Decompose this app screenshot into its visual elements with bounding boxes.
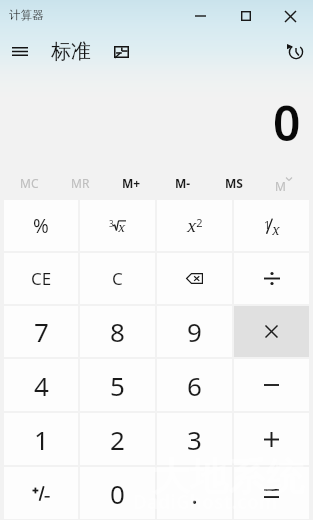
button[interactable]: C: [80, 253, 155, 304]
button[interactable]: More memory options: [259, 168, 310, 198]
staticText: C: [112, 267, 123, 290]
button[interactable]: M+: [106, 168, 157, 198]
staticText: x2: [187, 214, 203, 237]
button[interactable]: 9: [157, 306, 232, 357]
staticText: %: [33, 213, 49, 239]
staticText: 1: [34, 422, 49, 457]
button[interactable]: Minimize: [178, 0, 223, 32]
button[interactable]: MC: [3, 168, 55, 198]
staticText: x: [272, 220, 280, 236]
button[interactable]: 4: [4, 359, 78, 411]
button[interactable]: 6: [157, 359, 232, 411]
button[interactable]: M-: [157, 168, 208, 198]
button[interactable]: 0: [80, 467, 155, 519]
button[interactable]: 8: [80, 306, 155, 357]
button[interactable]: CE: [4, 253, 78, 304]
button[interactable]: Maximize: [223, 0, 268, 32]
staticText: MC: [20, 175, 39, 191]
button[interactable]: 7: [4, 306, 78, 357]
staticText: M: [275, 178, 286, 192]
button[interactable]: 3: [157, 413, 232, 465]
staticText: DadiGhost.com: [133, 489, 278, 515]
button[interactable]: %: [4, 200, 78, 251]
staticText: 5: [110, 368, 125, 403]
button[interactable]: 1: [234, 200, 309, 251]
staticText: MR: [71, 175, 90, 191]
staticText: x: [118, 218, 126, 234]
staticText: 8: [110, 314, 125, 349]
staticText: M-: [175, 175, 191, 191]
staticText: 0: [273, 90, 301, 148]
staticText: 标准: [51, 39, 91, 64]
button[interactable]: MR: [55, 168, 106, 198]
staticText: 7: [34, 314, 49, 349]
button[interactable]: Plus: [234, 413, 309, 465]
button[interactable]: x2: [157, 200, 232, 251]
button[interactable]: Menu: [4, 31, 36, 72]
staticText: 计算器: [9, 8, 44, 22]
button[interactable]: History: [281, 31, 309, 72]
staticText: CE: [31, 267, 52, 290]
button[interactable]: Keep on top: [107, 31, 135, 72]
staticText: MS: [225, 175, 243, 191]
staticText: .: [191, 476, 198, 511]
staticText: 2: [110, 422, 125, 457]
button[interactable]: Divide: [234, 253, 309, 304]
staticText: 3: [187, 422, 202, 457]
staticText: 4: [34, 368, 49, 403]
button[interactable]: Close: [268, 0, 313, 32]
button[interactable]: .: [157, 467, 232, 519]
staticText: 大地系统: [152, 453, 304, 501]
staticText: 1: [264, 217, 271, 232]
staticText: 0: [110, 476, 125, 511]
staticText: 9: [187, 314, 202, 349]
button[interactable]: Minus: [234, 359, 309, 411]
button[interactable]: 标准: [46, 31, 96, 72]
staticText: 6: [187, 368, 202, 403]
button[interactable]: 1: [4, 413, 78, 465]
button[interactable]: 2: [80, 413, 155, 465]
button[interactable]: Multiply: [234, 306, 309, 357]
button[interactable]: Backspace: [157, 253, 232, 304]
button[interactable]: MS: [208, 168, 259, 198]
staticText: M+: [122, 175, 141, 191]
staticText: 3: [109, 218, 114, 229]
button[interactable]: 3: [80, 200, 155, 251]
button[interactable]: 5: [80, 359, 155, 411]
button[interactable]: [4, 467, 78, 519]
button[interactable]: Equals: [234, 467, 309, 519]
